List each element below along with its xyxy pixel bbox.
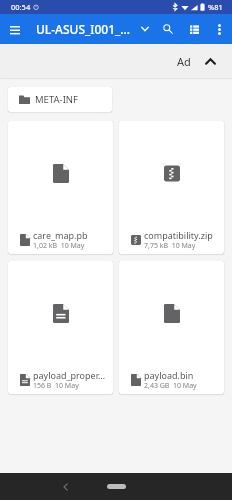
staticText: %81: [208, 2, 223, 12]
staticText: 7,75 kB 10 May: [144, 241, 196, 251]
staticText: care_map.pb: [33, 229, 88, 241]
button[interactable]: Back: [58, 480, 72, 494]
button[interactable]: More options: [207, 14, 232, 44]
button[interactable]: Home: [107, 484, 126, 489]
staticText: 156 B 10 May: [33, 381, 79, 391]
button[interactable]: care_map.pb: [8, 121, 113, 254]
staticText: Ad: [177, 54, 191, 69]
button[interactable]: View list: [181, 14, 207, 44]
staticText: UL-ASUS_I001_…: [36, 21, 135, 37]
staticText: payload.bin: [144, 369, 194, 381]
staticText: 2,43 GB 10 May: [144, 381, 197, 391]
button[interactable]: payload.bin: [119, 261, 224, 394]
staticText: compatibility.zip: [144, 229, 213, 241]
button[interactable]: payload_proper…: [8, 261, 113, 394]
button[interactable]: META-INF: [8, 87, 112, 112]
staticText: payload_proper…: [33, 369, 106, 381]
button[interactable]: compatibility.zip: [119, 121, 224, 254]
staticText: 00:54: [11, 2, 31, 12]
staticText: 1,02 kB 10 May: [33, 241, 85, 251]
button[interactable]: Expand: [135, 14, 154, 44]
button[interactable]: Menu: [0, 14, 30, 44]
button[interactable]: Collapse ad: [200, 51, 220, 71]
button[interactable]: Search: [154, 14, 181, 44]
staticText: META-INF: [35, 93, 79, 106]
